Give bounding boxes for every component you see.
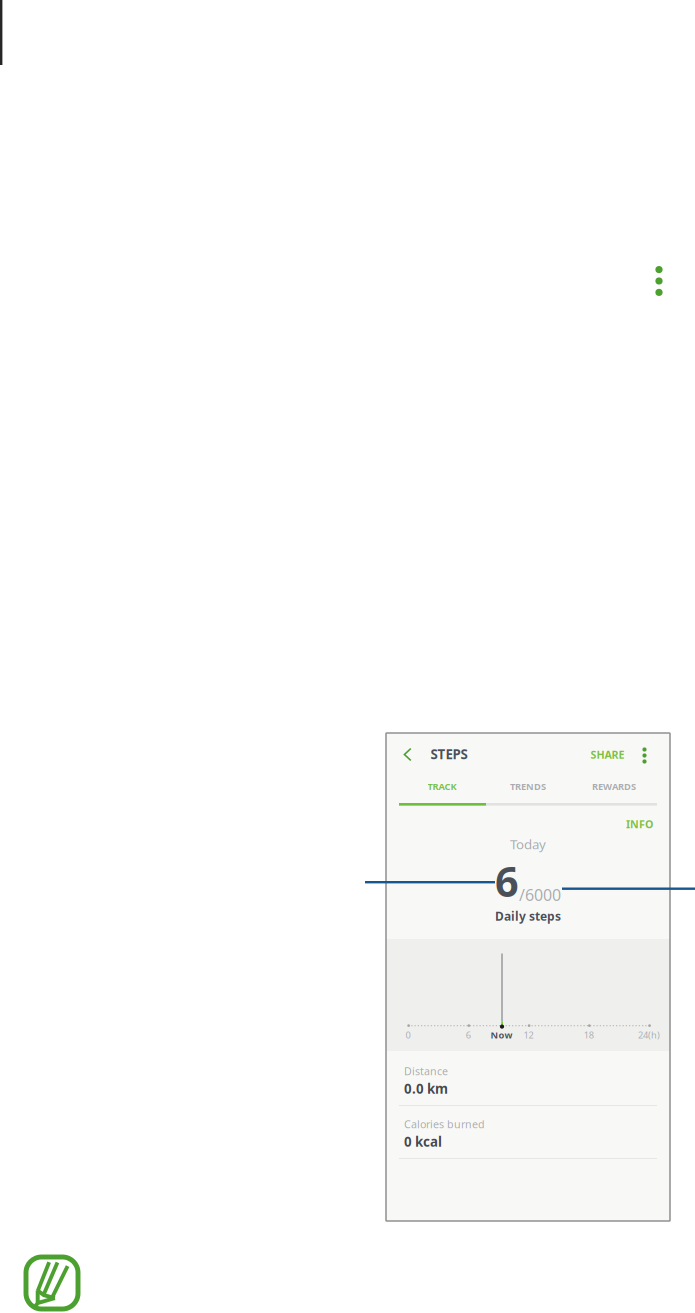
button[interactable]: More options xyxy=(648,264,670,298)
staticText: Calories burned xyxy=(404,1117,485,1131)
staticText: 6 xyxy=(466,1029,471,1041)
staticText: 12 xyxy=(523,1029,533,1041)
button[interactable]: Back xyxy=(395,741,421,767)
staticText: 0 xyxy=(405,1029,410,1041)
staticText: REWARDS xyxy=(592,780,636,793)
staticText: Daily steps xyxy=(495,908,561,924)
button[interactable]: SHARE xyxy=(586,742,642,766)
staticText: Distance xyxy=(404,1064,448,1078)
staticText: /6000 xyxy=(519,884,561,905)
staticText: 0 kcal xyxy=(404,1133,442,1150)
button[interactable]: INFO xyxy=(616,814,656,834)
staticText: Now xyxy=(490,1029,512,1041)
staticText: 18 xyxy=(584,1029,594,1041)
button[interactable]: More options xyxy=(633,743,655,767)
button[interactable]: TRACK xyxy=(399,774,485,798)
button[interactable]: TRENDS xyxy=(485,774,571,798)
staticText: STEPS xyxy=(430,745,467,763)
staticText: 6 xyxy=(495,854,519,908)
staticText: 24(h) xyxy=(638,1029,660,1041)
staticText: SHARE xyxy=(590,747,624,762)
staticText: INFO xyxy=(626,817,653,831)
staticText: TRENDS xyxy=(510,780,546,793)
button[interactable]: REWARDS xyxy=(571,774,657,798)
staticText: Today xyxy=(510,835,546,853)
staticText: 0.0 km xyxy=(404,1080,448,1097)
staticText: TRACK xyxy=(427,780,456,793)
